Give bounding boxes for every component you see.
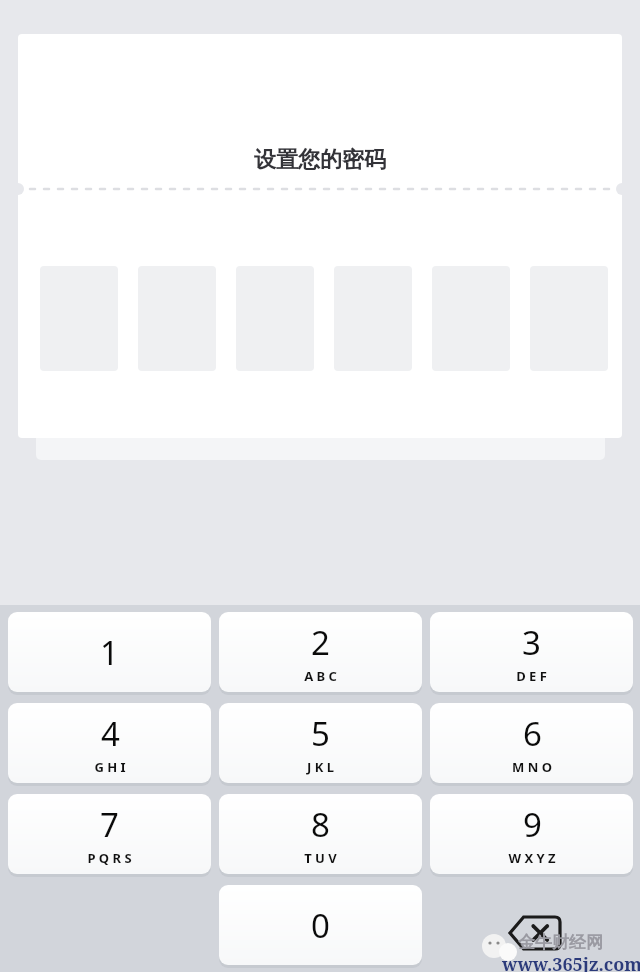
- button[interactable]: Delete: [492, 900, 576, 966]
- button[interactable]: 7: [8, 794, 211, 874]
- button[interactable]: 3: [430, 612, 633, 692]
- staticText: 4: [101, 711, 120, 756]
- staticText: 3: [522, 620, 541, 665]
- staticText: 设置您的密码: [254, 146, 386, 174]
- staticText: 6: [523, 711, 542, 756]
- button[interactable]: 0: [219, 885, 422, 965]
- staticText: J K L: [307, 758, 334, 776]
- button[interactable]: 8: [219, 794, 422, 874]
- staticText: 金牛财经网: [518, 932, 603, 953]
- staticText: W X Y Z: [508, 849, 556, 867]
- staticText: 2: [311, 620, 330, 665]
- staticText: 0: [311, 903, 330, 948]
- button[interactable]: 2: [219, 612, 422, 692]
- staticText: T U V: [304, 849, 337, 867]
- button[interactable]: 1: [8, 612, 211, 692]
- staticText: P Q R S: [87, 849, 132, 867]
- staticText: 1: [100, 630, 119, 675]
- staticText: www.365jz.com: [502, 952, 640, 972]
- staticText: D E F: [516, 667, 547, 685]
- button[interactable]: 6: [430, 703, 633, 783]
- staticText: G H I: [94, 758, 126, 776]
- staticText: 5: [311, 711, 330, 756]
- button[interactable]: 4: [8, 703, 211, 783]
- staticText: 9: [523, 802, 542, 847]
- button[interactable]: 9: [430, 794, 633, 874]
- staticText: 8: [311, 802, 330, 847]
- staticText: M N O: [512, 758, 552, 776]
- button[interactable]: 5: [219, 703, 422, 783]
- staticText: 7: [100, 802, 119, 847]
- staticText: A B C: [304, 667, 337, 685]
